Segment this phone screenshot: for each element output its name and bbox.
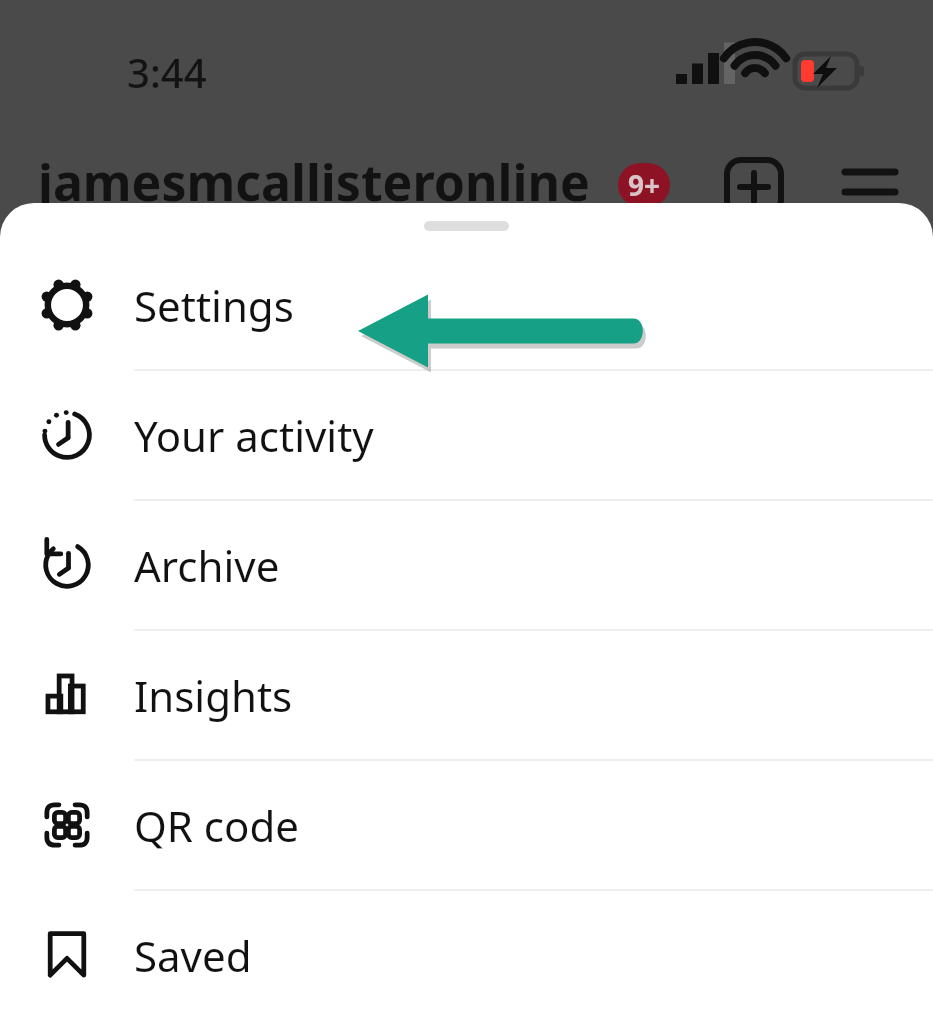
staticText: QR code [134,797,299,854]
button[interactable]: Your activity [0,371,933,499]
staticText: 9+ [628,166,661,204]
staticText: Your activity [134,407,374,464]
staticText: jamesmcallisteronline [38,148,590,216]
staticText: Insights [134,667,293,724]
staticText: 3:44 [127,45,207,99]
button[interactable]: Saved [0,891,933,1019]
staticText: Saved [134,927,252,984]
button[interactable]: Archive [0,501,933,629]
staticText: Archive [134,537,280,594]
staticText: Settings [134,277,294,334]
button[interactable]: QR code [0,761,933,889]
button[interactable]: Insights [0,631,933,759]
button[interactable]: Settings [0,241,933,369]
